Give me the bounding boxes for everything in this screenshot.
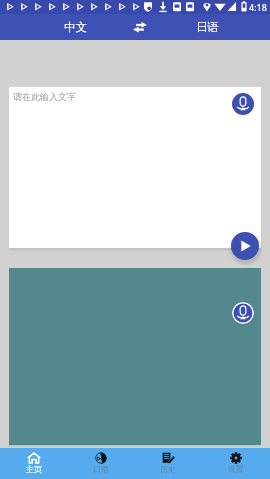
staticText: 主页: [26, 464, 42, 474]
staticText: 4:18: [249, 1, 267, 13]
staticText: 请在此输入文字: [13, 91, 76, 102]
staticText: 设置: [228, 464, 244, 474]
button[interactable]: Swap languages: [120, 14, 159, 40]
button[interactable]: 口语: [67, 448, 134, 479]
staticText: 日语: [196, 20, 219, 34]
button[interactable]: 设置: [202, 448, 270, 479]
button[interactable]: 历史: [134, 448, 202, 479]
button[interactable]: Voice input: [232, 93, 254, 115]
button[interactable]: 中文: [53, 14, 97, 40]
button[interactable]: Translate: [231, 232, 259, 260]
staticText: 历史: [160, 464, 176, 474]
button[interactable]: 日语: [185, 14, 229, 40]
staticText: 中文: [64, 20, 87, 34]
staticText: 口语: [93, 464, 109, 474]
button[interactable]: 主页: [0, 448, 67, 479]
button[interactable]: Voice input: [232, 302, 254, 324]
